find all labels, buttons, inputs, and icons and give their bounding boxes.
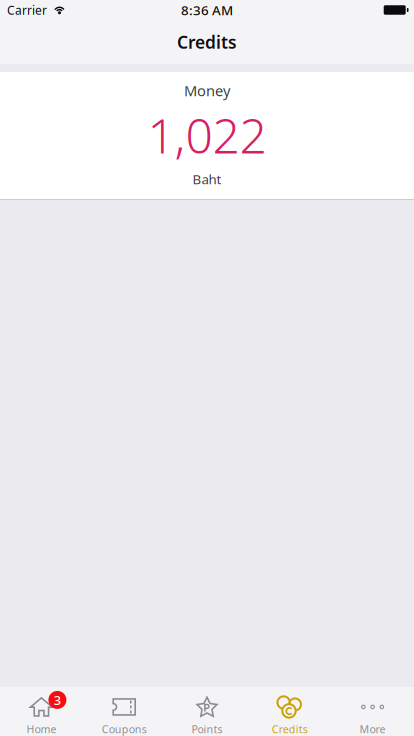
staticText: Points	[191, 722, 222, 736]
button[interactable]: Points	[166, 687, 248, 736]
button[interactable]: Coupons	[83, 687, 166, 736]
staticText: 8:36 AM	[181, 1, 233, 19]
staticText: Carrier	[7, 2, 47, 18]
staticText: Coupons	[102, 722, 147, 736]
staticText: 3	[53, 691, 61, 709]
staticText: Baht	[192, 170, 221, 188]
button[interactable]: More	[331, 687, 414, 736]
staticText: Credits	[177, 30, 237, 53]
staticText: Credits	[272, 722, 308, 736]
button[interactable]: Credits	[248, 687, 331, 736]
staticText: 1,022	[147, 103, 266, 167]
staticText: Home	[26, 722, 56, 736]
staticText: More	[360, 722, 386, 736]
staticText: Money	[184, 81, 230, 100]
button[interactable]: 3	[0, 687, 83, 736]
